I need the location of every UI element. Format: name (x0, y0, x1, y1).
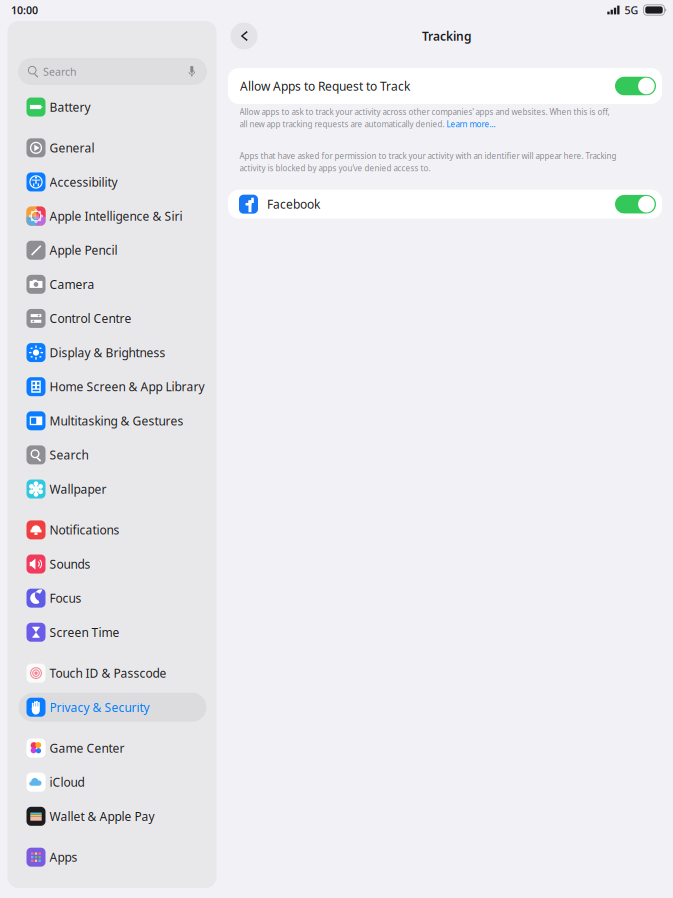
button[interactable]: Focus (18, 584, 206, 613)
staticText: Learn more... (446, 119, 495, 129)
staticText: General (49, 140, 94, 156)
button[interactable]: Back (230, 22, 257, 49)
staticText: activity is blocked by apps you’ve denie… (239, 163, 430, 173)
staticText: Multitasking & Gestures (49, 413, 183, 429)
staticText: Sounds (49, 556, 90, 572)
staticText: Apple Intelligence & Siri (49, 208, 182, 224)
button[interactable]: Search (18, 440, 206, 469)
button[interactable]: Search (18, 58, 207, 85)
button[interactable]: Apps (18, 843, 206, 872)
staticText: Facebook (267, 196, 320, 212)
staticText: iCloud (49, 774, 84, 790)
button[interactable]: Home Screen & App Library (18, 372, 206, 401)
staticText: Notifications (49, 522, 119, 538)
button[interactable]: General (18, 133, 206, 162)
button[interactable]: Display & Brightness (18, 338, 206, 367)
staticText: Camera (49, 276, 94, 292)
staticText: Game Center (49, 740, 124, 756)
staticText: Control Centre (49, 310, 131, 326)
staticText: Apps that have asked for permission to t… (239, 151, 616, 161)
staticText: Touch ID & Passcode (49, 665, 166, 681)
button[interactable]: Battery (18, 92, 206, 121)
staticText: all new app tracking requests are automa… (239, 119, 446, 129)
button[interactable]: Multitasking & Gestures (18, 406, 206, 435)
button[interactable]: Facebook (228, 190, 662, 219)
staticText: Allow apps to ask to track your activity… (239, 107, 609, 117)
staticText: Focus (49, 590, 81, 606)
staticText: Privacy & Security (49, 699, 149, 715)
button[interactable]: iCloud (18, 768, 206, 797)
button[interactable]: Control Centre (18, 304, 206, 333)
staticText: Home Screen & App Library (49, 379, 204, 395)
button[interactable]: Touch ID & Passcode (18, 659, 206, 688)
button[interactable]: Game Center (18, 734, 206, 763)
button[interactable]: Camera (18, 270, 206, 299)
staticText: Screen Time (49, 624, 119, 640)
button[interactable]: Learn more... (446, 119, 495, 129)
button[interactable]: Sounds (18, 549, 206, 578)
button[interactable]: Wallpaper (18, 475, 206, 504)
staticText: 10:00 (11, 3, 38, 17)
staticText: Apps (49, 849, 77, 865)
staticText: Tracking (422, 28, 472, 44)
button[interactable]: Accessibility (18, 167, 206, 196)
button[interactable]: Screen Time (18, 618, 206, 647)
staticText: Battery (49, 99, 90, 115)
staticText: Accessibility (49, 174, 117, 190)
staticText: Search (49, 447, 88, 463)
button[interactable]: Allow Apps to Request to Track (615, 77, 656, 95)
button[interactable]: Wallet & Apple Pay (18, 802, 206, 831)
staticText: Wallet & Apple Pay (49, 808, 154, 824)
staticText: 5G (624, 3, 638, 17)
staticText: Wallpaper (49, 481, 106, 497)
button[interactable]: Privacy & Security (18, 693, 206, 722)
staticText: Allow Apps to Request to Track (240, 78, 410, 94)
staticText: Search (43, 64, 77, 79)
staticText: Display & Brightness (49, 345, 165, 360)
button[interactable]: Apple Pencil (18, 236, 206, 265)
button[interactable]: Notifications (18, 515, 206, 544)
button[interactable]: Apple Intelligence & Siri (18, 202, 206, 231)
staticText: Apple Pencil (49, 242, 117, 258)
